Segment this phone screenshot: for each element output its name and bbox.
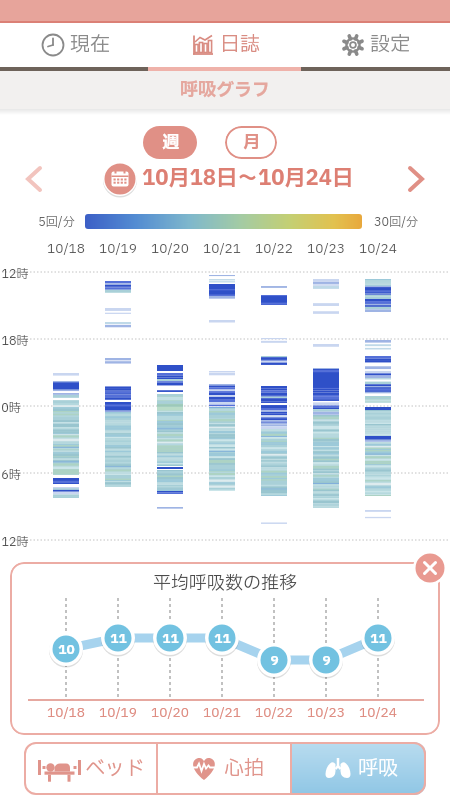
button[interactable]: 心拍: [158, 742, 292, 795]
staticText: 11: [214, 629, 231, 647]
staticText: 平均呼吸数の推移: [153, 570, 297, 594]
button[interactable]: 月: [225, 126, 277, 159]
button[interactable]: 現在: [0, 23, 150, 67]
staticText: 9: [322, 651, 331, 669]
staticText: 12時: [1, 533, 29, 548]
button[interactable]: [413, 551, 447, 585]
staticText: 10/22: [255, 239, 293, 256]
staticText: 11: [162, 629, 179, 647]
staticText: 10/23: [307, 703, 345, 721]
staticText: 10/23: [307, 239, 345, 256]
button[interactable]: [103, 162, 137, 196]
button[interactable]: [400, 163, 432, 195]
staticText: 10/19: [99, 703, 137, 721]
staticText: 心拍: [224, 754, 264, 784]
staticText: 現在: [70, 30, 110, 60]
staticText: 日誌: [220, 30, 260, 60]
staticText: 10/20: [151, 703, 189, 721]
staticText: 0時: [1, 399, 21, 414]
staticText: 月: [243, 130, 260, 155]
staticText: 10/21: [203, 703, 241, 721]
button[interactable]: 日誌: [150, 23, 300, 67]
button[interactable]: [18, 163, 50, 195]
staticText: 呼吸グラフ: [180, 77, 270, 104]
staticText: 10月18日〜10月24日: [142, 163, 353, 194]
staticText: 10/21: [203, 239, 241, 256]
staticText: 10/24: [359, 239, 397, 256]
staticText: 18時: [1, 332, 29, 347]
staticText: 10: [58, 640, 75, 658]
staticText: 設定: [370, 30, 410, 60]
staticText: 呼吸: [358, 754, 398, 784]
staticText: 11: [370, 629, 387, 647]
staticText: 10/18: [47, 239, 85, 256]
staticText: 30回/分: [374, 213, 418, 229]
button[interactable]: ベッド: [24, 742, 158, 795]
staticText: 6時: [1, 466, 21, 481]
button[interactable]: 設定: [300, 23, 450, 67]
staticText: 週: [162, 130, 179, 155]
button[interactable]: 呼吸: [292, 742, 426, 795]
staticText: 9: [270, 651, 279, 669]
staticText: ベッド: [85, 754, 145, 784]
staticText: 10/20: [151, 239, 189, 256]
button[interactable]: 週: [143, 126, 197, 159]
staticText: 10/24: [359, 703, 397, 721]
staticText: 12時: [1, 265, 29, 280]
staticText: 5回/分: [38, 213, 75, 229]
staticText: 10/18: [47, 703, 85, 721]
staticText: 11: [110, 629, 127, 647]
staticText: 10/22: [255, 703, 293, 721]
staticText: 10/19: [99, 239, 137, 256]
